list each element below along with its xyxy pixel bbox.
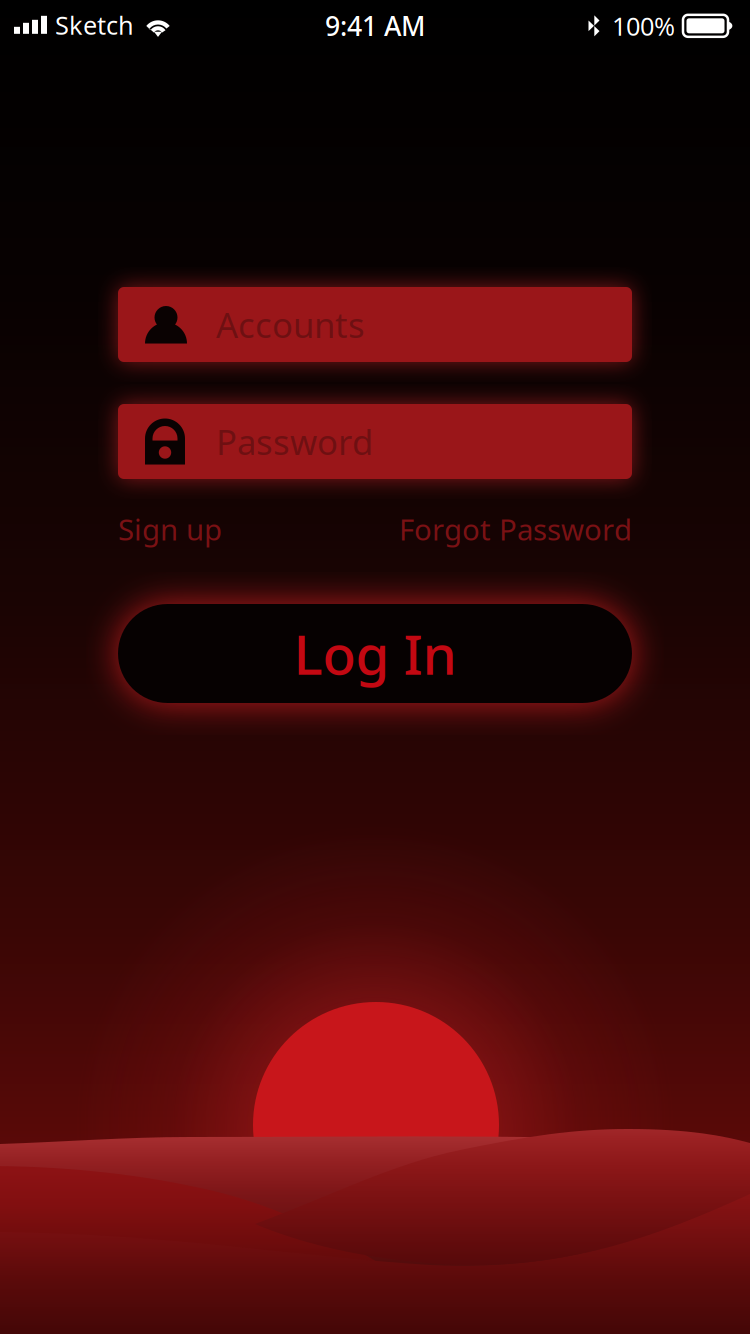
staticText: Sketch [55, 8, 134, 42]
staticText: Forgot Password [399, 509, 632, 548]
staticText: Sign up [118, 509, 222, 548]
button[interactable]: Sign up [118, 509, 222, 548]
staticText: Log In [293, 617, 456, 690]
staticText: 9:41 AM [325, 8, 425, 43]
button[interactable]: Accounts [118, 287, 632, 362]
staticText: Password [216, 418, 373, 464]
button[interactable]: Password [118, 404, 632, 479]
button[interactable]: Forgot Password [399, 509, 632, 548]
staticText: 100% [612, 9, 675, 43]
staticText: Accounts [216, 301, 365, 347]
button[interactable]: Log In [118, 604, 632, 703]
